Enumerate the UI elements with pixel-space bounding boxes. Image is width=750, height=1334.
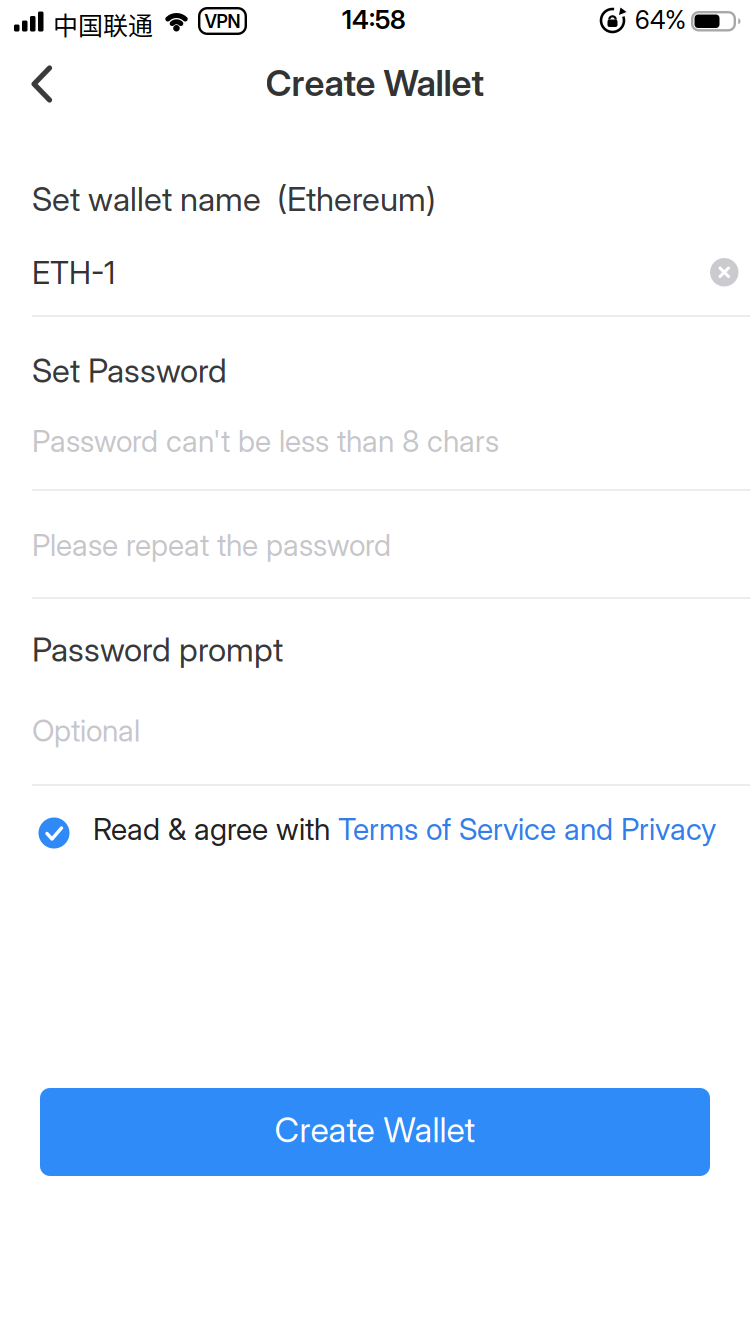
staticText: 64%	[635, 5, 686, 35]
staticText: Create Wallet	[274, 1109, 475, 1150]
staticText: Please repeat the password	[32, 527, 391, 563]
button[interactable]: Agree	[38, 817, 69, 848]
staticText: Terms of Service and Privacy	[338, 811, 716, 847]
button[interactable]: Back	[0, 59, 80, 109]
staticText: ETH-1	[32, 254, 115, 291]
staticText: 中国联通	[53, 6, 153, 42]
staticText: VPN	[204, 10, 240, 32]
staticText: Password prompt	[32, 629, 283, 669]
staticText: Read & agree with	[93, 811, 338, 847]
staticText: Create Wallet	[265, 61, 484, 105]
staticText: Set wallet name (Ethereum)	[32, 179, 436, 219]
staticText: Set Password	[32, 350, 227, 390]
button[interactable]: Terms of Service and Privacy	[338, 811, 716, 847]
staticText: 14:58	[342, 4, 406, 35]
staticText: Password can't be less than 8 chars	[32, 423, 499, 459]
staticText: Optional	[32, 712, 140, 749]
button[interactable]: Clear text	[710, 258, 738, 286]
button[interactable]: Create Wallet	[40, 1088, 710, 1176]
